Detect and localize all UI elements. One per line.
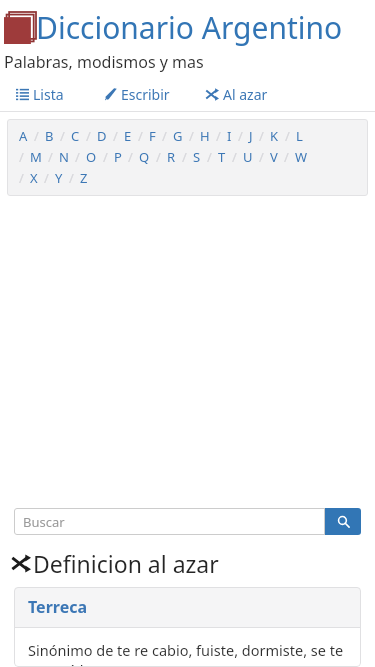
button[interactable]: C bbox=[71, 127, 80, 145]
button[interactable]: A bbox=[19, 127, 28, 145]
button[interactable]: Q bbox=[139, 148, 150, 166]
button[interactable]: Terreca bbox=[14, 587, 361, 627]
button[interactable]: O bbox=[86, 148, 97, 166]
staticText: G bbox=[173, 127, 183, 145]
staticText: / bbox=[44, 169, 49, 187]
staticText: F bbox=[149, 127, 156, 145]
staticText: Buscar bbox=[23, 513, 65, 531]
staticText: Z bbox=[80, 169, 88, 187]
staticText: / bbox=[162, 127, 167, 145]
button[interactable]: X bbox=[30, 169, 38, 187]
button[interactable]: Buscar bbox=[325, 508, 361, 535]
staticText: / bbox=[285, 127, 290, 145]
button[interactable]: E bbox=[124, 127, 132, 145]
staticText: / bbox=[69, 169, 74, 187]
button[interactable]: K bbox=[270, 127, 279, 145]
staticText: / bbox=[60, 127, 65, 145]
staticText: O bbox=[86, 148, 97, 166]
staticText: / bbox=[75, 148, 80, 166]
staticText: Palabras, modismos y mas bbox=[4, 51, 204, 73]
button[interactable]: F bbox=[149, 127, 156, 145]
staticText: / bbox=[34, 127, 39, 145]
staticText: A bbox=[19, 127, 28, 145]
button[interactable]: S bbox=[193, 148, 201, 166]
staticText: M bbox=[30, 148, 42, 166]
staticText: Al azar bbox=[223, 85, 268, 104]
button[interactable]: I bbox=[227, 127, 232, 145]
button[interactable]: W bbox=[295, 148, 308, 166]
staticText: / bbox=[156, 148, 161, 166]
staticText: R bbox=[167, 148, 176, 166]
staticText: T bbox=[218, 148, 226, 166]
staticText: P bbox=[114, 148, 122, 166]
button[interactable]: V bbox=[270, 148, 278, 166]
staticText: / bbox=[48, 148, 53, 166]
button[interactable]: Al azar bbox=[204, 82, 270, 107]
button[interactable]: T bbox=[218, 148, 226, 166]
button[interactable]: U bbox=[243, 148, 253, 166]
staticText: / bbox=[19, 169, 24, 187]
staticText: Y bbox=[55, 169, 63, 187]
staticText: Sinónimo de te re cabio, fuiste, dormist… bbox=[28, 640, 351, 667]
staticText: D bbox=[97, 127, 107, 145]
staticText: / bbox=[259, 148, 264, 166]
staticText: Diccionario Argentino bbox=[36, 7, 343, 48]
staticText: / bbox=[138, 127, 143, 145]
staticText: / bbox=[238, 127, 243, 145]
staticText: J bbox=[249, 127, 253, 145]
staticText: Definicion al azar bbox=[33, 548, 219, 579]
staticText: / bbox=[189, 127, 194, 145]
staticText: W bbox=[295, 148, 308, 166]
button[interactable]: B bbox=[45, 127, 54, 145]
button[interactable]: P bbox=[114, 148, 122, 166]
staticText: Terreca bbox=[28, 596, 88, 618]
staticText: C bbox=[71, 127, 80, 145]
staticText: V bbox=[270, 148, 278, 166]
staticText: S bbox=[193, 148, 201, 166]
staticText: Escribir bbox=[121, 85, 170, 104]
staticText: / bbox=[182, 148, 187, 166]
staticText: X bbox=[30, 169, 38, 187]
staticText: U bbox=[243, 148, 253, 166]
staticText: / bbox=[216, 127, 221, 145]
button[interactable]: L bbox=[296, 127, 303, 145]
button[interactable]: R bbox=[167, 148, 176, 166]
staticText: E bbox=[124, 127, 132, 145]
staticText: / bbox=[19, 148, 24, 166]
button[interactable]: M bbox=[30, 148, 42, 166]
staticText: I bbox=[227, 127, 232, 145]
button[interactable]: D bbox=[97, 127, 107, 145]
staticText: / bbox=[103, 148, 108, 166]
button[interactable]: Lista bbox=[14, 82, 66, 107]
staticText: Lista bbox=[33, 85, 64, 104]
staticText: K bbox=[270, 127, 279, 145]
button[interactable]: Buscar bbox=[14, 508, 325, 535]
button[interactable]: N bbox=[59, 148, 69, 166]
staticText: N bbox=[59, 148, 69, 166]
button[interactable]: Z bbox=[80, 169, 88, 187]
staticText: H bbox=[200, 127, 210, 145]
staticText: B bbox=[45, 127, 54, 145]
staticText: / bbox=[207, 148, 212, 166]
button[interactable]: Escribir bbox=[102, 82, 172, 107]
staticText: / bbox=[128, 148, 133, 166]
staticText: L bbox=[296, 127, 303, 145]
staticText: / bbox=[113, 127, 118, 145]
button[interactable]: H bbox=[200, 127, 210, 145]
staticText: / bbox=[284, 148, 289, 166]
staticText: / bbox=[259, 127, 264, 145]
button[interactable]: J bbox=[249, 127, 253, 145]
button[interactable]: Y bbox=[55, 169, 63, 187]
staticText: Q bbox=[139, 148, 150, 166]
staticText: / bbox=[86, 127, 91, 145]
button[interactable]: G bbox=[173, 127, 183, 145]
staticText: / bbox=[232, 148, 237, 166]
